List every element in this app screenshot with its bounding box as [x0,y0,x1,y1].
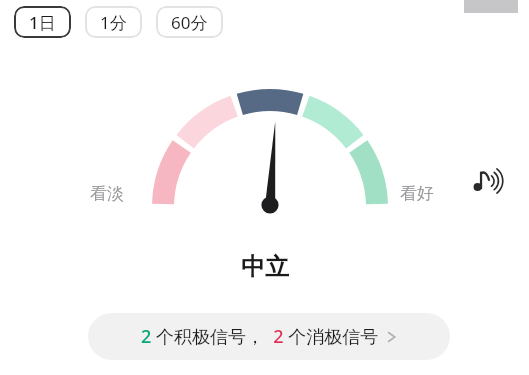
staticText: 1分 [100,11,127,34]
button[interactable]: 2 个积极信号， 2 个消极信号 [88,313,450,360]
button[interactable]: 1分 [85,6,142,38]
button[interactable]: 1日 [14,6,71,38]
button[interactable]: 60分 [156,6,223,38]
button[interactable]: Audio playback [462,0,520,228]
staticText: 看好 [400,183,434,204]
staticText: 中立 [241,252,289,282]
staticText: 60分 [171,11,208,34]
staticText: 2 个积极信号， 2 个消极信号 [141,324,379,349]
staticText: 1日 [29,11,56,34]
staticText: 看淡 [90,183,124,204]
